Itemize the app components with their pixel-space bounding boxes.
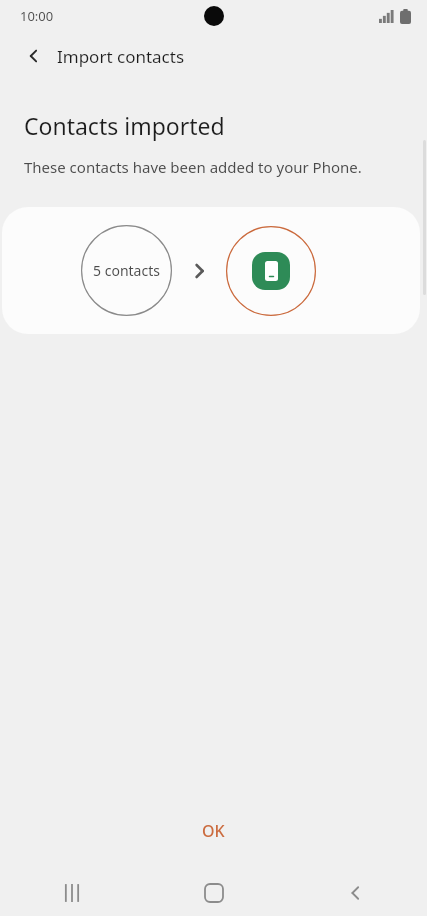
staticText: 5 contacts [93, 261, 160, 280]
button[interactable]: Back [14, 36, 54, 76]
button[interactable]: Home [143, 869, 285, 916]
staticText: Import contacts [57, 45, 185, 68]
staticText: Contacts imported [24, 110, 225, 141]
staticText: These contacts have been added to your P… [24, 157, 362, 177]
button[interactable]: Recent apps [0, 869, 143, 916]
button[interactable]: Back [285, 869, 427, 916]
button[interactable]: OK [174, 810, 253, 852]
staticText: 10:00 [20, 7, 54, 25]
button[interactable]: 5 contacts [2, 207, 420, 334]
staticText: OK [202, 820, 225, 842]
